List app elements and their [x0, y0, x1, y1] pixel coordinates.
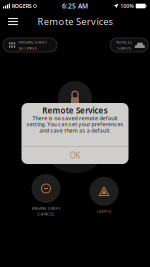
- button[interactable]: Engine Start Cancel: [21, 174, 71, 216]
- staticText: 6:25 AM: [62, 2, 88, 10]
- staticText: OK: [69, 150, 80, 161]
- button[interactable]: Menu: [2, 12, 24, 31]
- staticText: setting. You can set your preferences: [26, 121, 124, 128]
- button[interactable]: Lights: [79, 177, 129, 214]
- staticText: ENGINE START: [32, 205, 60, 211]
- staticText: VEHICLE: [116, 39, 132, 45]
- staticText: STATUS: [117, 45, 131, 51]
- staticText: ENGINE START: [18, 39, 47, 45]
- staticText: and save them as a default.: [39, 127, 111, 134]
- staticText: ROGERS: [12, 2, 32, 10]
- staticText: LIGHTS: [97, 208, 111, 214]
- button[interactable]: Lock: [58, 81, 92, 115]
- button[interactable]: OK: [21, 147, 128, 164]
- button[interactable]: ENGINE START: [3, 38, 57, 52]
- staticText: CANCEL: [38, 211, 54, 216]
- staticText: 100%: [120, 2, 134, 10]
- button[interactable]: VEHICLE: [110, 38, 148, 52]
- staticText: There is no saved remote default: [32, 115, 118, 122]
- staticText: Remote Services: [42, 105, 108, 116]
- staticText: Remote Services: [37, 15, 112, 28]
- staticText: SETTINGS: [18, 45, 36, 51]
